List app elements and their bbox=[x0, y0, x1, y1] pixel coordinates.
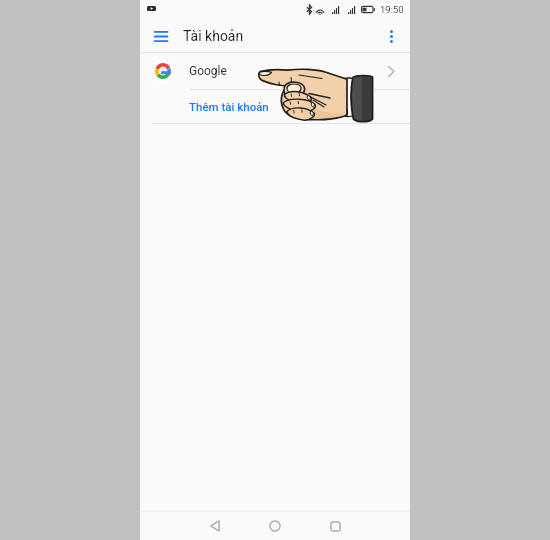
button[interactable]: Google bbox=[140, 53, 410, 89]
button[interactable]: Recent apps bbox=[315, 512, 355, 540]
button[interactable]: More options bbox=[377, 22, 405, 50]
staticText: Google bbox=[189, 64, 227, 78]
button[interactable]: Menu bbox=[147, 22, 175, 50]
staticText: Tài khoản bbox=[183, 28, 244, 44]
staticText: Thêm tài khoản bbox=[189, 100, 269, 113]
staticText: 19:50 bbox=[380, 4, 404, 15]
button[interactable]: Home bbox=[255, 512, 295, 540]
button[interactable]: Thêm tài khoản bbox=[140, 89, 410, 123]
button[interactable]: Back bbox=[195, 512, 235, 540]
